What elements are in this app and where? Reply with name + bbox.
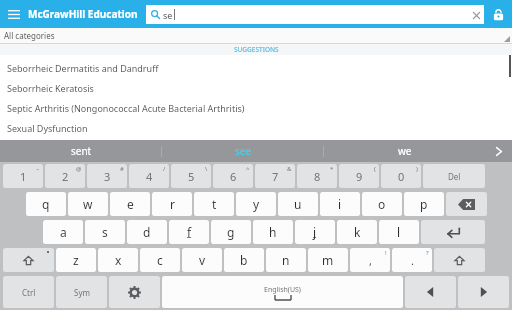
button[interactable]: r: [152, 192, 192, 216]
staticText: Ctrl: [22, 287, 36, 298]
staticText: m: [322, 252, 334, 268]
button[interactable]: o: [362, 192, 402, 216]
button[interactable]: n: [266, 248, 306, 272]
staticText: @: [76, 165, 82, 173]
staticText: ?: [426, 249, 429, 257]
staticText: sent: [71, 144, 92, 158]
button[interactable]: a: [43, 220, 83, 244]
button[interactable]: we: [324, 140, 486, 162]
button[interactable]: q: [26, 192, 66, 216]
button[interactable]: u: [278, 192, 318, 216]
button[interactable]: Enter: [421, 220, 485, 244]
button[interactable]: Del: [423, 164, 485, 188]
staticText: 9: [356, 169, 363, 184]
button[interactable]: d: [127, 220, 167, 244]
button[interactable]: h: [253, 220, 293, 244]
staticText: se: [163, 9, 173, 21]
staticText: c: [157, 252, 163, 268]
staticText: x: [115, 252, 122, 268]
button[interactable]: 0: [381, 164, 421, 188]
staticText: SUGGESTIONS: [234, 45, 279, 54]
button[interactable]: 9: [339, 164, 379, 188]
button[interactable]: Ctrl: [3, 276, 54, 308]
button[interactable]: x: [98, 248, 138, 272]
button[interactable]: 7: [255, 164, 295, 188]
button[interactable]: 2: [45, 164, 85, 188]
button[interactable]: Septic Arthritis (Nongonococcal Acute Ba…: [0, 98, 512, 118]
button[interactable]: All categories: [0, 28, 512, 43]
staticText: Sexual Dysfunction: [7, 122, 88, 134]
button[interactable]: 8: [297, 164, 337, 188]
button[interactable]: k: [337, 220, 377, 244]
button[interactable]: Seborrheic Dermatitis and Dandruff: [0, 58, 512, 78]
button[interactable]: s: [85, 220, 125, 244]
button[interactable]: m: [308, 248, 348, 272]
staticText: ): [416, 165, 418, 173]
staticText: q: [42, 196, 50, 212]
button[interactable]: Input settings: [109, 276, 160, 308]
staticText: 2: [62, 169, 69, 184]
button[interactable]: Shift: [434, 248, 485, 272]
staticText: we: [398, 144, 412, 158]
staticText: *: [330, 165, 334, 173]
button[interactable]: 4: [129, 164, 169, 188]
button[interactable]: 6: [213, 164, 253, 188]
staticText: t: [212, 196, 217, 212]
button[interactable]: Seborrheic Keratosis: [0, 78, 512, 98]
button[interactable]: see: [162, 140, 324, 162]
button[interactable]: y: [236, 192, 276, 216]
button[interactable]: w: [68, 192, 108, 216]
staticText: p: [420, 196, 428, 212]
staticText: 4: [146, 169, 153, 184]
button[interactable]: .: [392, 248, 432, 272]
button[interactable]: b: [224, 248, 264, 272]
button[interactable]: More suggestions: [486, 140, 512, 162]
button[interactable]: v: [182, 248, 222, 272]
button[interactable]: c: [140, 248, 180, 272]
staticText: #: [120, 165, 124, 173]
button[interactable]: t: [194, 192, 234, 216]
button[interactable]: 3: [87, 164, 127, 188]
button[interactable]: Backspace: [446, 192, 487, 216]
button[interactable]: sent: [0, 140, 162, 162]
button[interactable]: Move cursor left: [405, 276, 456, 308]
button[interactable]: l: [379, 220, 419, 244]
staticText: y: [253, 196, 260, 212]
button[interactable]: Sexual Dysfunction: [0, 118, 512, 138]
staticText: Seborrheic Dermatitis and Dandruff: [7, 62, 159, 74]
button[interactable]: Sym: [56, 276, 107, 308]
button[interactable]: Menu: [0, 0, 28, 28]
button[interactable]: Clear: [468, 7, 484, 23]
button[interactable]: se: [146, 5, 484, 24]
button[interactable]: ,: [350, 248, 390, 272]
staticText: n: [282, 252, 290, 268]
staticText: l: [397, 224, 401, 240]
button[interactable]: Shift: [3, 248, 54, 272]
staticText: e: [127, 196, 134, 212]
button[interactable]: Secure: [484, 0, 512, 28]
button[interactable]: 5: [171, 164, 211, 188]
staticText: d: [143, 224, 151, 240]
staticText: Seborrheic Keratosis: [7, 82, 94, 94]
button[interactable]: i: [320, 192, 360, 216]
button[interactable]: Move cursor right: [458, 276, 509, 308]
button[interactable]: p: [404, 192, 444, 216]
staticText: f: [187, 224, 192, 240]
staticText: &: [287, 165, 292, 173]
button[interactable]: z: [56, 248, 96, 272]
staticText: 3: [104, 169, 111, 184]
staticText: j: [313, 224, 317, 240]
staticText: 5: [188, 169, 195, 184]
staticText: z: [73, 252, 79, 268]
button[interactable]: 1: [3, 164, 43, 188]
button[interactable]: f: [169, 220, 209, 244]
button[interactable]: e: [110, 192, 150, 216]
button[interactable]: g: [211, 220, 251, 244]
button[interactable]: English(US): [162, 276, 403, 308]
button[interactable]: j: [295, 220, 335, 244]
staticText: i: [338, 196, 342, 212]
staticText: 8: [314, 169, 321, 184]
staticText: \: [205, 165, 208, 173]
